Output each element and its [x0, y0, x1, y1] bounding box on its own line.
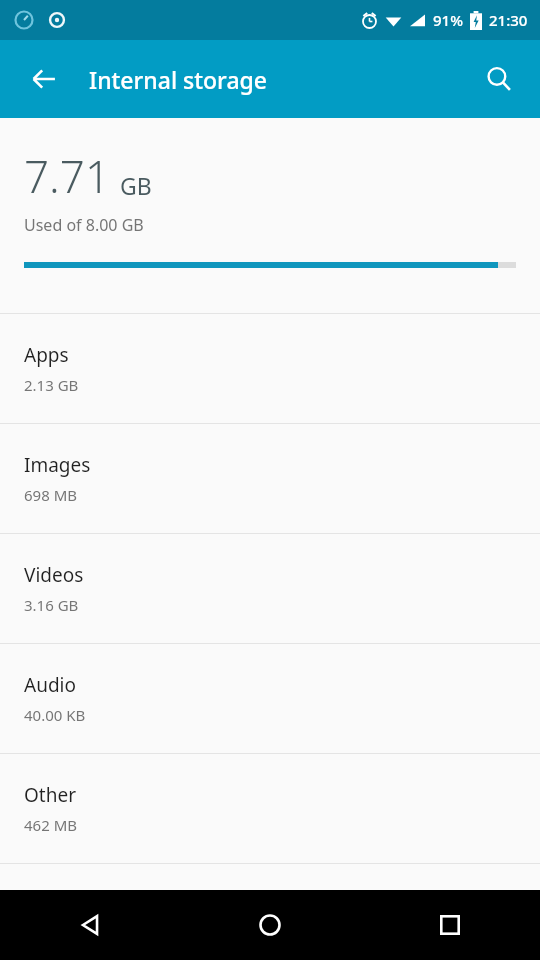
staticText: GB: [120, 170, 152, 201]
staticText: 698 MB: [24, 485, 77, 505]
staticText: 3.16 GB: [24, 595, 79, 615]
staticText: 7.71: [24, 146, 111, 206]
button[interactable]: Home: [180, 890, 360, 960]
staticText: 21:30: [489, 10, 528, 30]
staticText: Videos: [24, 562, 84, 588]
staticText: Other: [24, 782, 77, 808]
button[interactable]: Recent apps: [360, 890, 540, 960]
staticText: 91%: [433, 10, 463, 30]
button[interactable]: Apps: [0, 314, 540, 423]
staticText: Used of 8.00 GB: [24, 214, 144, 236]
button[interactable]: Audio: [0, 644, 540, 753]
staticText: 2.13 GB: [24, 375, 79, 395]
staticText: Internal storage: [89, 64, 267, 95]
staticText: Apps: [24, 342, 69, 368]
staticText: 462 MB: [24, 815, 77, 835]
staticText: 40.00 KB: [24, 705, 86, 725]
button[interactable]: Search: [470, 50, 528, 108]
button[interactable]: Back: [0, 890, 180, 960]
staticText: Audio: [24, 672, 76, 698]
button[interactable]: Videos: [0, 534, 540, 643]
button[interactable]: Other: [0, 754, 540, 863]
button[interactable]: Navigate up: [14, 49, 74, 109]
button[interactable]: Images: [0, 424, 540, 533]
staticText: Images: [24, 452, 91, 478]
